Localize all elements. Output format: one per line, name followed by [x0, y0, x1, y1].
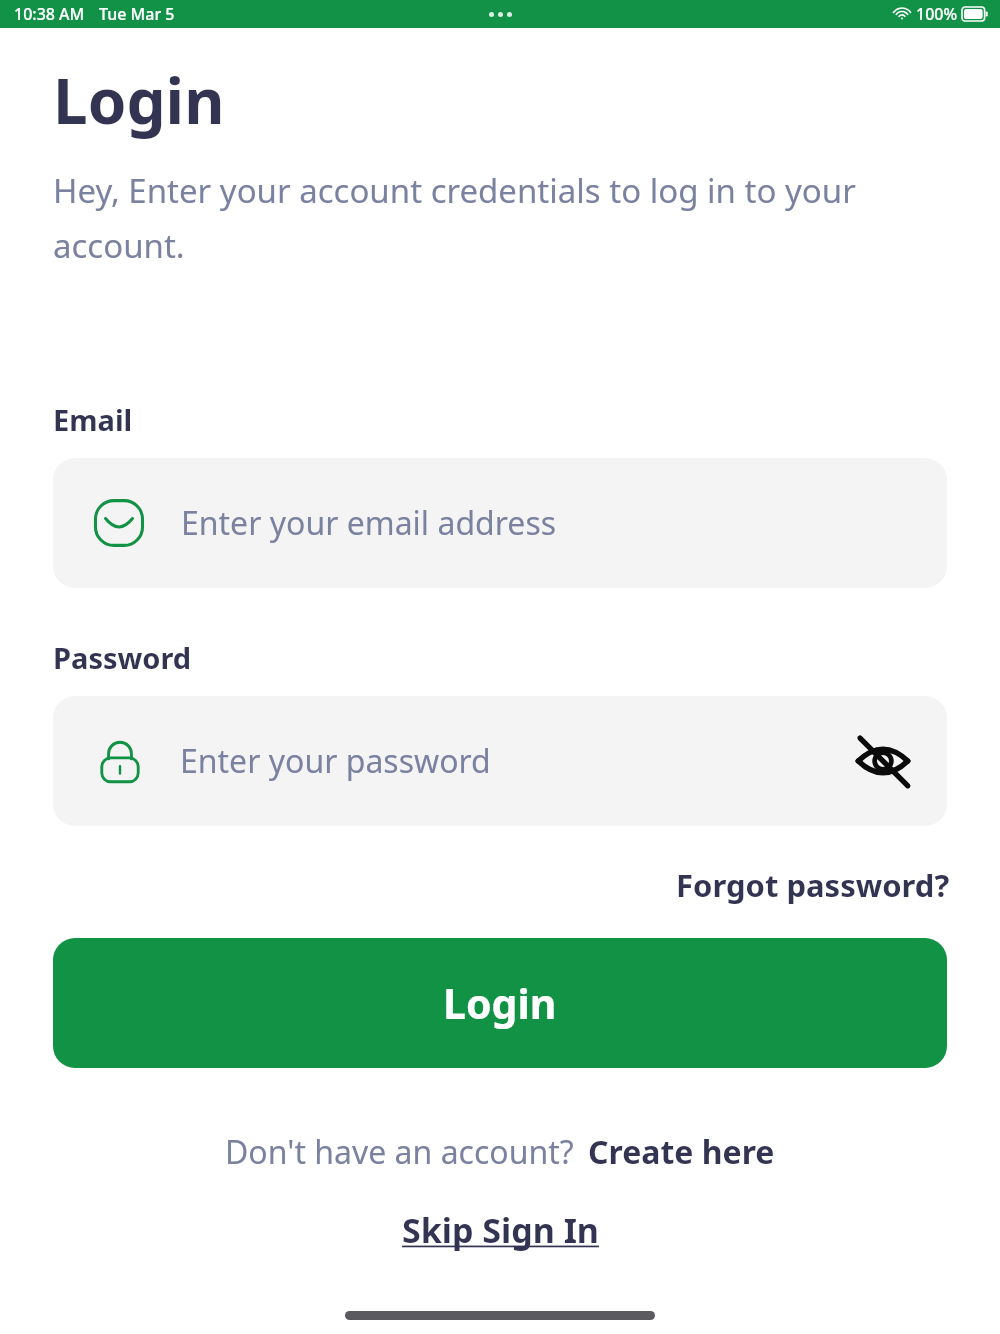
staticText: Don't have an account? — [225, 1130, 574, 1174]
staticText: Forgot password? — [676, 864, 950, 906]
staticText: Skip Sign In — [402, 1207, 599, 1253]
staticText: 10:38 AM — [14, 3, 85, 25]
staticText: Login — [443, 975, 557, 1031]
button[interactable]: Login — [53, 938, 947, 1068]
button[interactable]: Enter your password — [53, 696, 947, 826]
button[interactable]: Enter your email address — [53, 458, 947, 588]
button[interactable]: Forgot password? — [676, 864, 950, 906]
button[interactable]: Show password — [843, 721, 923, 801]
staticText: Password — [53, 638, 192, 677]
staticText: Email — [53, 400, 133, 439]
staticText: Hey, Enter your account credentials to l… — [53, 168, 950, 268]
button[interactable]: Create here — [588, 1130, 775, 1174]
staticText: Tue Mar 5 — [99, 3, 175, 25]
button[interactable]: Skip Sign In — [402, 1207, 599, 1253]
staticText: Enter your email address — [181, 501, 557, 545]
staticText: Create here — [588, 1130, 775, 1174]
staticText: Enter your password — [180, 739, 843, 783]
staticText: 100% — [916, 3, 958, 25]
staticText: Login — [53, 58, 225, 142]
